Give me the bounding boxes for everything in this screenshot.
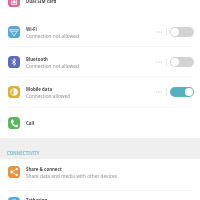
button[interactable]: Turn on: [170, 57, 194, 67]
staticText: Tethering: [26, 197, 48, 200]
staticText: Mobile data: [26, 86, 53, 92]
staticText: Bluetooth: [26, 56, 48, 62]
button[interactable]: Turn off: [170, 87, 194, 97]
button[interactable]: Tethering: [0, 197, 200, 200]
staticText: CONNECTIVITY: [7, 150, 40, 156]
button[interactable]: Share & connect: [0, 166, 200, 178]
button[interactable]: Call: [0, 117, 200, 129]
staticText: Connection allowed: [26, 93, 71, 98]
button[interactable]: Turn on: [170, 27, 194, 37]
staticText: Connection not allowed: [26, 63, 79, 68]
button[interactable]: Dual SIM card: [0, 0, 200, 7]
button[interactable]: Wi-Fi: [0, 26, 200, 38]
staticText: Connection not allowed: [26, 33, 79, 38]
staticText: Call: [26, 120, 35, 126]
staticText: Share data and media with other devices: [26, 173, 118, 178]
button[interactable]: More options: [156, 26, 166, 38]
button[interactable]: More options: [156, 56, 166, 68]
button[interactable]: Bluetooth: [0, 56, 200, 68]
staticText: Wi-Fi: [26, 26, 37, 32]
staticText: Dual SIM card: [26, 0, 57, 4]
button[interactable]: Mobile data: [0, 86, 200, 98]
button[interactable]: More options: [156, 86, 166, 98]
staticText: Share & connect: [26, 166, 62, 172]
